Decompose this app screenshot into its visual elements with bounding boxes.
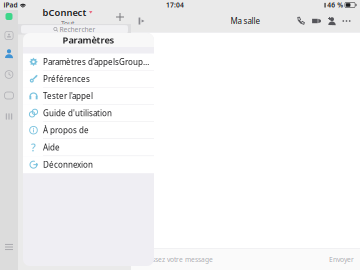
button[interactable]: Messages bbox=[0, 88, 18, 103]
button[interactable]: Keypad bbox=[0, 109, 18, 124]
button[interactable]: Add participant bbox=[327, 15, 337, 27]
staticText: Envoyer bbox=[329, 255, 354, 264]
button[interactable]: Recents bbox=[0, 67, 18, 82]
staticText: Guide d'utilisation bbox=[43, 108, 112, 118]
button[interactable]: New conversation bbox=[109, 9, 131, 25]
staticText: bConnect bbox=[43, 6, 87, 18]
staticText: Tester l'appel bbox=[43, 91, 93, 101]
staticText: Préférences bbox=[43, 74, 90, 84]
staticText: iPad bbox=[3, 1, 17, 9]
staticText: ? bbox=[31, 140, 36, 154]
button[interactable]: More bbox=[0, 240, 18, 254]
staticText: Tout bbox=[61, 19, 74, 28]
button[interactable]: Tester l'appel bbox=[23, 88, 154, 105]
button[interactable]: ? bbox=[23, 139, 154, 156]
button[interactable]: Guide d'utilisation bbox=[23, 105, 154, 122]
button[interactable]: Toggle sidebar bbox=[133, 14, 150, 28]
staticText: À propos de bbox=[43, 125, 89, 135]
button[interactable]: Paramètres d'appelsGroupes d'ap… bbox=[23, 53, 154, 71]
staticText: Rechercher bbox=[60, 25, 96, 34]
button[interactable]: À propos de bbox=[23, 122, 154, 139]
button[interactable]: Préférences bbox=[23, 71, 154, 88]
button[interactable]: Envoyer bbox=[329, 255, 360, 264]
staticText: 46 % bbox=[327, 1, 343, 9]
staticText: Aide bbox=[43, 142, 60, 153]
button[interactable]: Contacts bbox=[0, 46, 18, 61]
staticText: 17:04 bbox=[166, 1, 184, 9]
button[interactable]: Déconnexion bbox=[23, 156, 154, 173]
button[interactable]: Video call bbox=[311, 15, 322, 27]
staticText: Paramètres bbox=[62, 34, 114, 46]
button[interactable]: Account bbox=[0, 28, 18, 43]
button[interactable]: More options bbox=[342, 15, 351, 27]
staticText: Déconnexion bbox=[43, 159, 93, 170]
staticText: Ma salle bbox=[230, 16, 260, 26]
staticText: Saisissez votre message bbox=[137, 255, 213, 264]
staticText: Paramètres d'appelsGroupes d'ap… bbox=[43, 56, 149, 67]
button[interactable]: bConnect bbox=[43, 6, 92, 18]
button[interactable]: Call bbox=[296, 15, 306, 27]
